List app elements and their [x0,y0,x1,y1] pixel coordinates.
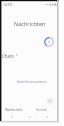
button[interactable]: Recents [45,115,49,119]
button[interactable]: Kontakte [36,107,48,114]
staticText: Nachrichten [5,107,24,114]
staticText: Chats [2,53,14,59]
button[interactable]: Start chat [46,97,54,105]
staticText: Kontakte [36,107,48,114]
staticText: Keine Konversationen [17,80,47,84]
staticText: 14:09 [3,2,13,7]
staticText: Nachrichten [14,20,46,27]
button[interactable]: Home [28,115,32,119]
button[interactable]: Account [44,37,54,47]
button[interactable]: Nachrichten [5,107,24,114]
button[interactable]: Back [10,115,14,119]
